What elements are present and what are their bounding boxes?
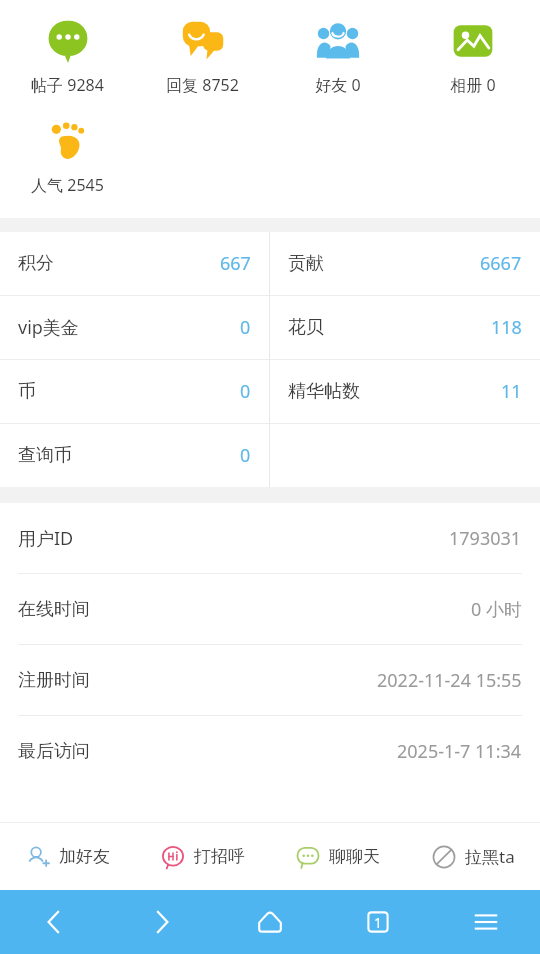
button[interactable]: Say hi <box>135 823 270 890</box>
staticText: 1 <box>374 913 383 932</box>
staticText: 注册时间 <box>18 669 90 692</box>
staticText: 人气 2545 <box>31 174 104 196</box>
staticText: 在线时间 <box>18 598 90 621</box>
button[interactable]: Add friend <box>0 823 135 890</box>
button[interactable]: 相册 0 <box>405 16 540 98</box>
button[interactable]: 用户ID <box>0 503 540 573</box>
staticText: 查询币 <box>18 444 72 467</box>
staticText: 打招呼 <box>194 846 245 867</box>
button[interactable]: Chat <box>270 823 405 890</box>
staticText: 币 <box>18 380 36 403</box>
button[interactable]: 币 <box>0 360 269 423</box>
button[interactable]: Back <box>0 890 108 954</box>
staticText: 118 <box>491 315 522 340</box>
staticText: 0 <box>240 315 251 340</box>
button[interactable]: Home <box>216 890 324 954</box>
staticText: 0 <box>240 379 251 404</box>
staticText: 667 <box>220 251 251 276</box>
button[interactable]: 贡献 <box>270 232 540 295</box>
button[interactable]: 人气 2545 <box>0 116 135 198</box>
staticText: 花贝 <box>288 316 324 339</box>
button[interactable]: 查询币 <box>0 424 269 487</box>
staticText: 相册 0 <box>450 74 496 96</box>
button[interactable]: 在线时间 <box>0 574 540 644</box>
button[interactable]: 好友 0 <box>270 16 405 98</box>
staticText: 回复 8752 <box>166 74 239 96</box>
staticText: 2025-1-7 11:34 <box>397 739 522 764</box>
button[interactable]: 花贝 <box>270 296 540 359</box>
button[interactable]: Forward <box>108 890 216 954</box>
button[interactable]: 精华帖数 <box>270 360 540 423</box>
button[interactable]: 积分 <box>0 232 269 295</box>
staticText: vip美金 <box>18 315 79 340</box>
staticText: 11 <box>501 379 522 404</box>
staticText: 好友 0 <box>315 74 361 96</box>
staticText: 聊聊天 <box>329 846 380 867</box>
button[interactable]: 回复 8752 <box>135 16 270 98</box>
button[interactable]: Tabs <box>324 890 432 954</box>
staticText: 6667 <box>480 251 522 276</box>
staticText: 贡献 <box>288 252 324 275</box>
staticText: 拉黑ta <box>465 845 515 868</box>
staticText: 最后访问 <box>18 740 90 763</box>
button[interactable]: 帖子 9284 <box>0 16 135 98</box>
staticText: 加好友 <box>59 846 110 867</box>
button[interactable]: Menu <box>432 890 540 954</box>
staticText: 1793031 <box>449 526 522 551</box>
staticText: 用户ID <box>18 526 74 551</box>
staticText: 积分 <box>18 252 54 275</box>
staticText: 2022-11-24 15:55 <box>377 668 522 693</box>
staticText: 精华帖数 <box>288 380 360 403</box>
button[interactable]: 最后访问 <box>0 716 540 786</box>
staticText: 帖子 9284 <box>31 74 104 96</box>
staticText: 0 <box>240 443 251 468</box>
button[interactable]: Block <box>405 823 540 890</box>
staticText: 0 小时 <box>471 597 522 622</box>
button[interactable]: 注册时间 <box>0 645 540 715</box>
button[interactable]: vip美金 <box>0 296 269 359</box>
